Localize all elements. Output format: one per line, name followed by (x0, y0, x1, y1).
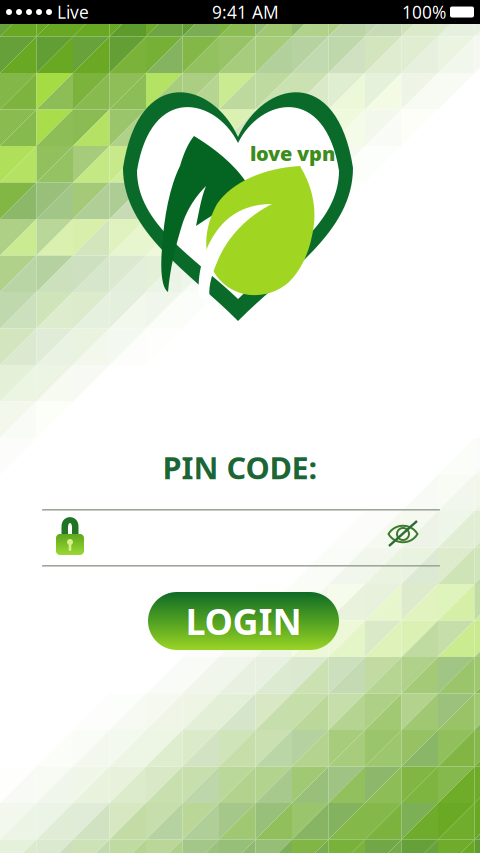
staticText: 100% (402, 0, 446, 23)
staticText: Live (57, 0, 89, 23)
button[interactable]: Show PIN (0, 0, 480, 853)
staticText: LOGIN (185, 597, 301, 645)
staticText: PIN CODE: (162, 447, 317, 488)
staticText: 9:41 AM (212, 0, 279, 23)
button[interactable]: LOGIN (148, 592, 339, 650)
staticText: love vpn (250, 140, 335, 167)
